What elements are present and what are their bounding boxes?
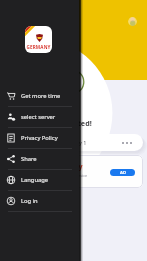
staticText: Germany 1 bbox=[58, 139, 87, 146]
button[interactable]: Get more time bbox=[0, 86, 79, 106]
staticText: AD bbox=[120, 170, 126, 176]
button[interactable]: Share bbox=[0, 149, 79, 169]
staticText: Protect your device bbox=[53, 173, 88, 178]
button[interactable]: AD bbox=[110, 169, 135, 176]
button[interactable]: Language bbox=[0, 170, 79, 190]
staticText: Share bbox=[21, 155, 37, 163]
staticText: GERMANY bbox=[25, 44, 52, 50]
staticText: Security bbox=[54, 162, 83, 172]
staticText: Get more time bbox=[21, 92, 61, 100]
staticText: Log in bbox=[21, 197, 38, 205]
staticText: Language bbox=[21, 176, 49, 184]
button[interactable]: Privacy Policy bbox=[0, 128, 79, 148]
button[interactable]: Log in bbox=[0, 191, 79, 211]
staticText: select server bbox=[21, 113, 56, 121]
staticText: Connected! bbox=[0, 118, 145, 128]
button[interactable]: GERMANY bbox=[25, 26, 52, 53]
button[interactable]: Germany 1 bbox=[44, 134, 143, 151]
staticText: Privacy Policy bbox=[21, 134, 58, 142]
button[interactable]: select server bbox=[0, 107, 79, 127]
button[interactable]: Premium bbox=[127, 16, 138, 27]
